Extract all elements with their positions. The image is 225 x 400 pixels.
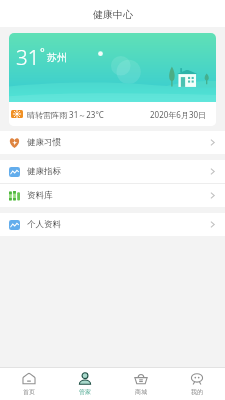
staticText: 商城 bbox=[135, 388, 147, 396]
staticText: 健康习惯 bbox=[27, 137, 61, 148]
button[interactable]: 个人资料 bbox=[0, 213, 225, 236]
staticText: 首页 bbox=[23, 388, 35, 396]
staticText: 苏州 bbox=[47, 51, 67, 64]
staticText: 晴转雷阵雨 31～23°C bbox=[27, 109, 104, 120]
staticText: 资料库 bbox=[27, 190, 53, 201]
staticText: 健康中心 bbox=[93, 8, 133, 21]
button[interactable]: 首页 bbox=[0, 368, 57, 400]
button[interactable]: 我的 bbox=[169, 368, 225, 400]
button[interactable]: 健康指标 bbox=[0, 160, 225, 183]
button[interactable]: 商城 bbox=[113, 368, 169, 400]
staticText: 31 bbox=[16, 43, 40, 71]
staticText: 2020年6月30日 bbox=[150, 109, 207, 120]
staticText: 个人资料 bbox=[27, 219, 61, 230]
staticText: 我的 bbox=[191, 388, 203, 396]
button[interactable]: 健康习惯 bbox=[0, 131, 225, 154]
staticText: ° bbox=[40, 44, 45, 59]
button[interactable]: 管家 bbox=[57, 368, 113, 400]
staticText: 管家 bbox=[79, 388, 91, 396]
button[interactable]: 31 bbox=[9, 33, 216, 126]
button[interactable]: 资料库 bbox=[0, 184, 225, 207]
staticText: 健康指标 bbox=[27, 166, 61, 177]
